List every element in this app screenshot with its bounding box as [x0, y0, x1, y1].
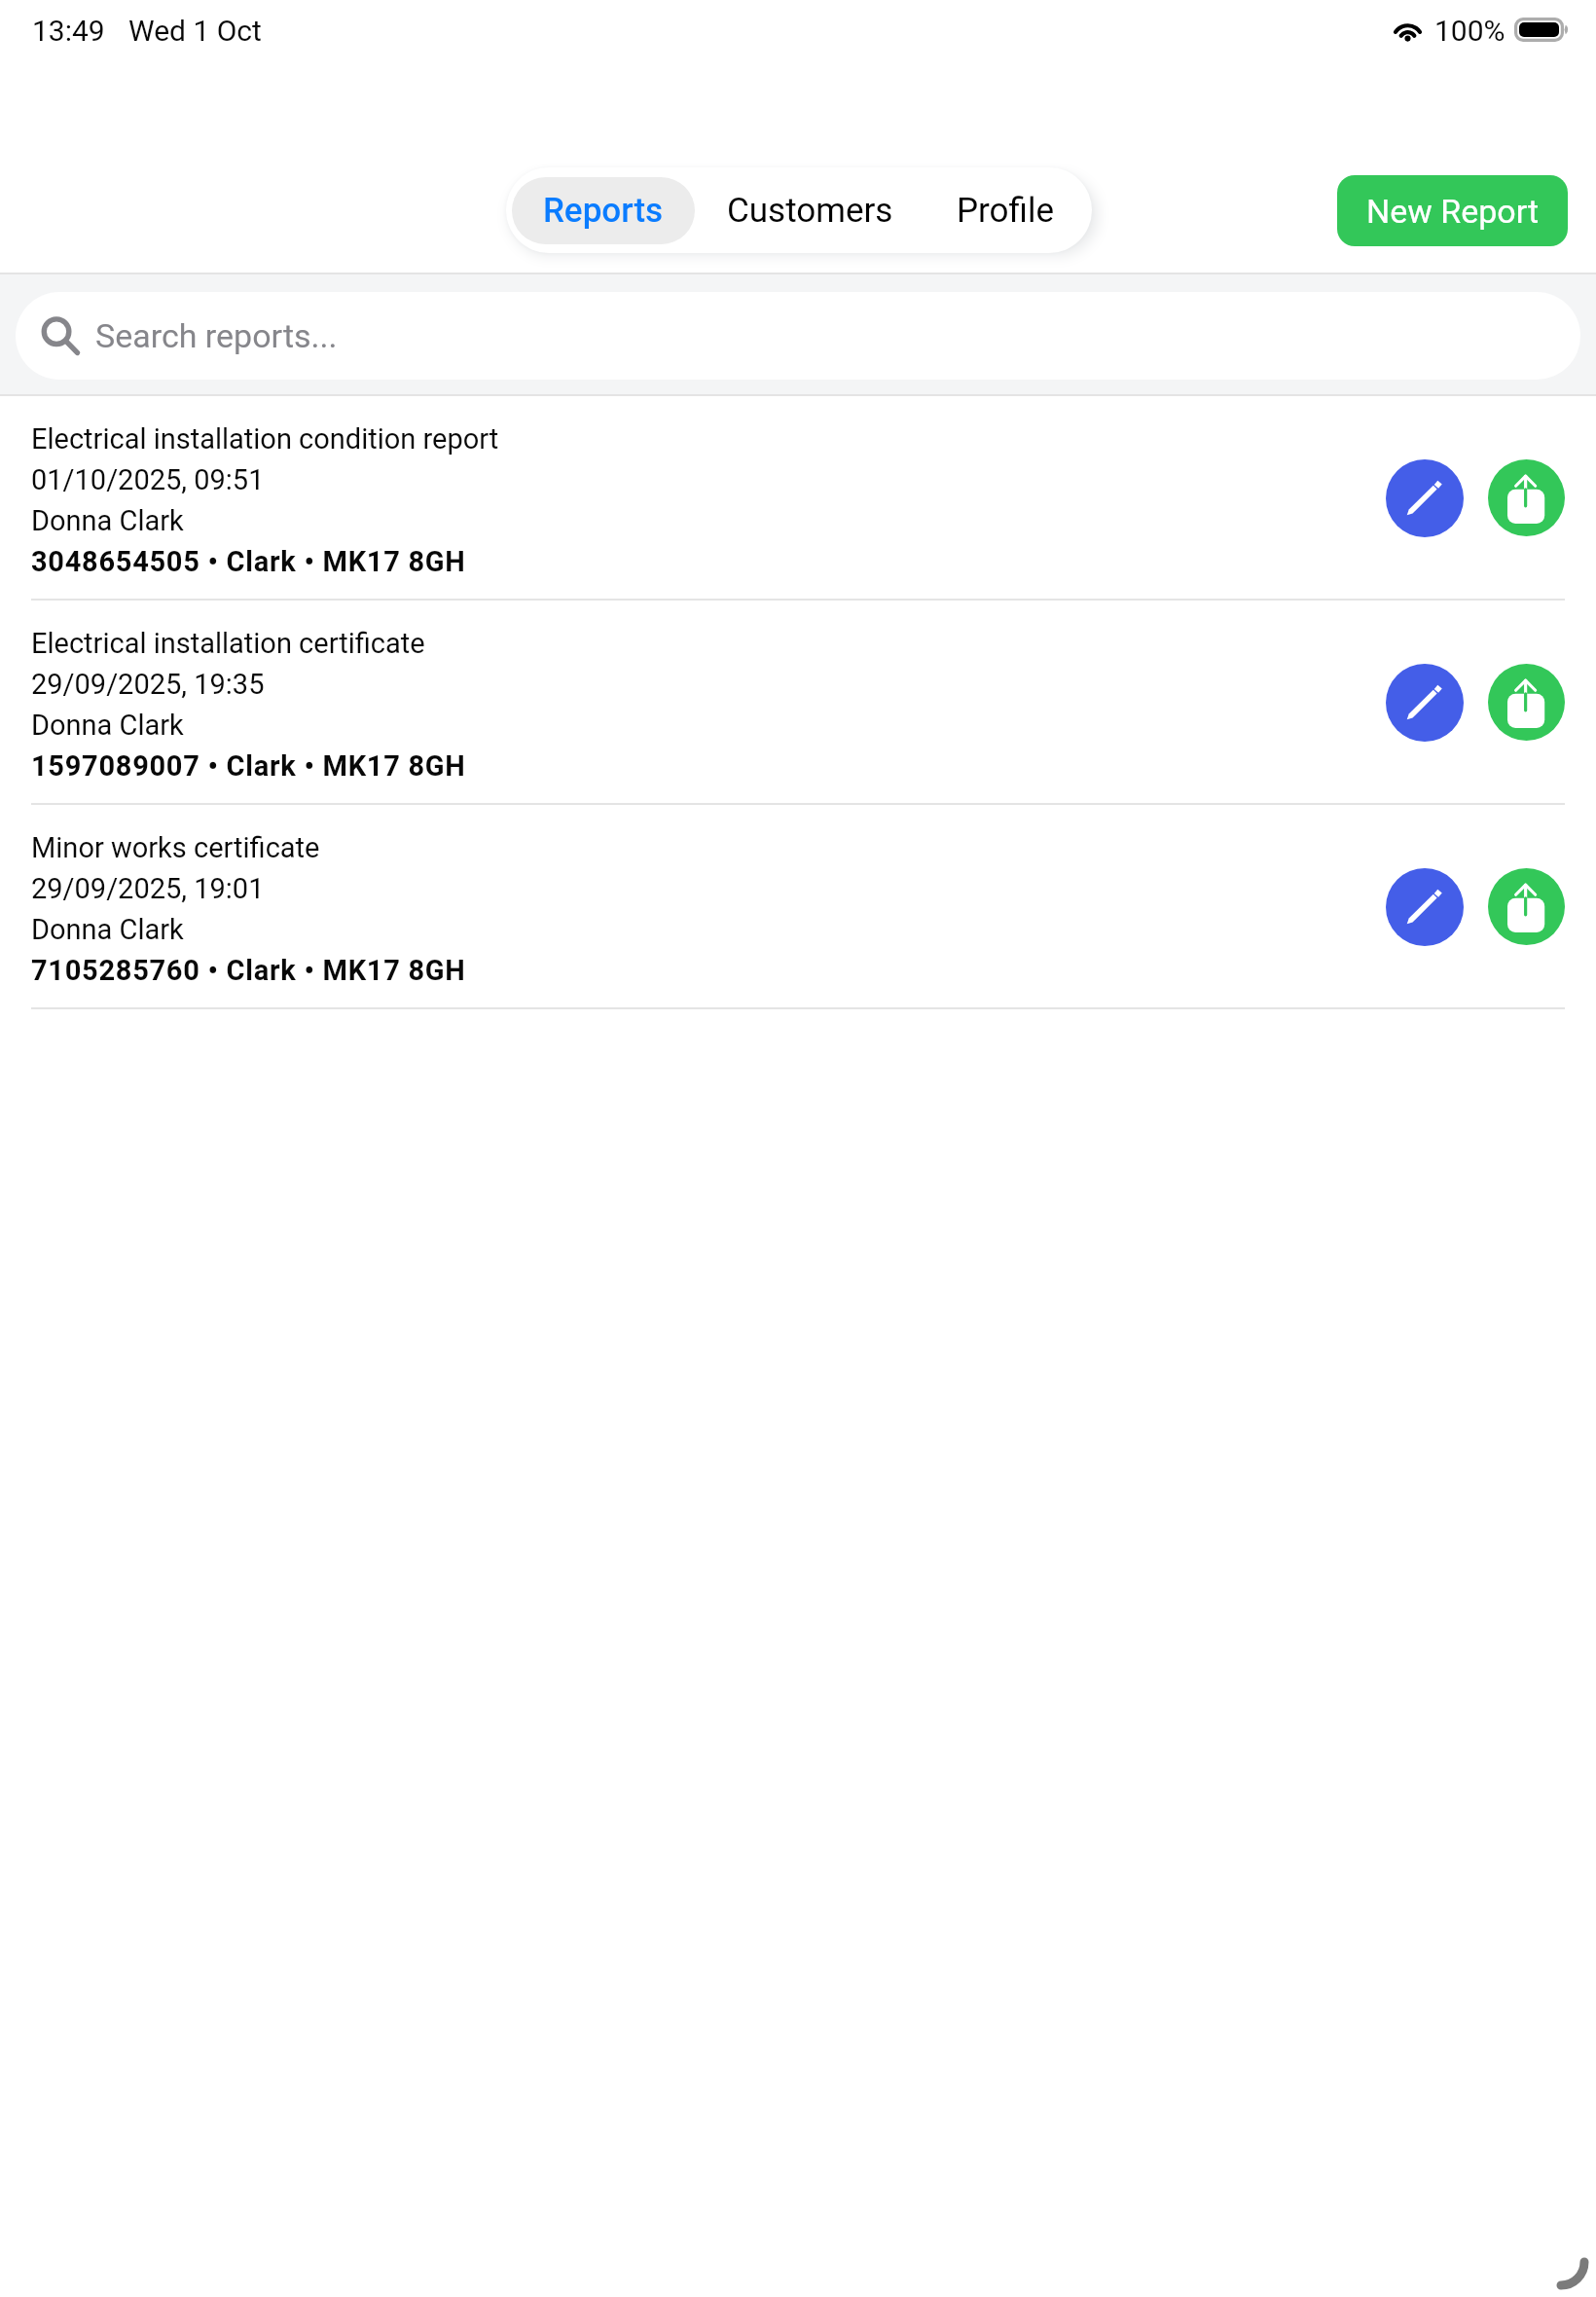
staticText: 01/10/2025, 09:51 [31, 457, 265, 498]
staticText: Electrical installation certificate [31, 621, 425, 662]
staticText: Customers [727, 191, 893, 231]
button[interactable]: Edit report [1386, 664, 1464, 742]
button[interactable]: Reports [512, 177, 695, 244]
staticText: Profile [957, 191, 1055, 231]
staticText: 3048654505 • Clark • MK17 8GH [31, 539, 466, 580]
staticText: 13:49 [32, 14, 105, 48]
staticText: Search reports... [95, 316, 338, 355]
button[interactable]: Search reports... [16, 292, 1580, 380]
staticText: Donna Clark [31, 703, 184, 744]
button[interactable]: Edit report [1386, 459, 1464, 537]
staticText: Donna Clark [31, 498, 184, 539]
button[interactable]: Customers [695, 177, 925, 244]
staticText: 100% [1434, 14, 1505, 48]
button[interactable]: Edit report [1386, 868, 1464, 946]
button[interactable]: Share report [1488, 459, 1565, 536]
staticText: Electrical installation condition report [31, 417, 499, 457]
button[interactable]: Share report [1488, 868, 1565, 945]
button[interactable]: Electrical installation certificate [0, 601, 1596, 805]
button[interactable]: Share report [1488, 664, 1565, 741]
button[interactable]: New Report [1337, 175, 1568, 246]
button[interactable]: Minor works certificate [0, 805, 1596, 1009]
button[interactable]: Electrical installation condition report [0, 396, 1596, 601]
staticText: 1597089007 • Clark • MK17 8GH [31, 744, 466, 784]
staticText: Wed 1 Oct [128, 14, 262, 48]
staticText: 29/09/2025, 19:01 [31, 866, 265, 907]
staticText: New Report [1366, 192, 1540, 231]
staticText: 29/09/2025, 19:35 [31, 662, 265, 703]
staticText: Donna Clark [31, 907, 184, 948]
staticText: 7105285760 • Clark • MK17 8GH [31, 948, 466, 989]
staticText: Reports [543, 191, 664, 231]
button[interactable]: Profile [925, 177, 1086, 244]
staticText: Minor works certificate [31, 825, 320, 866]
